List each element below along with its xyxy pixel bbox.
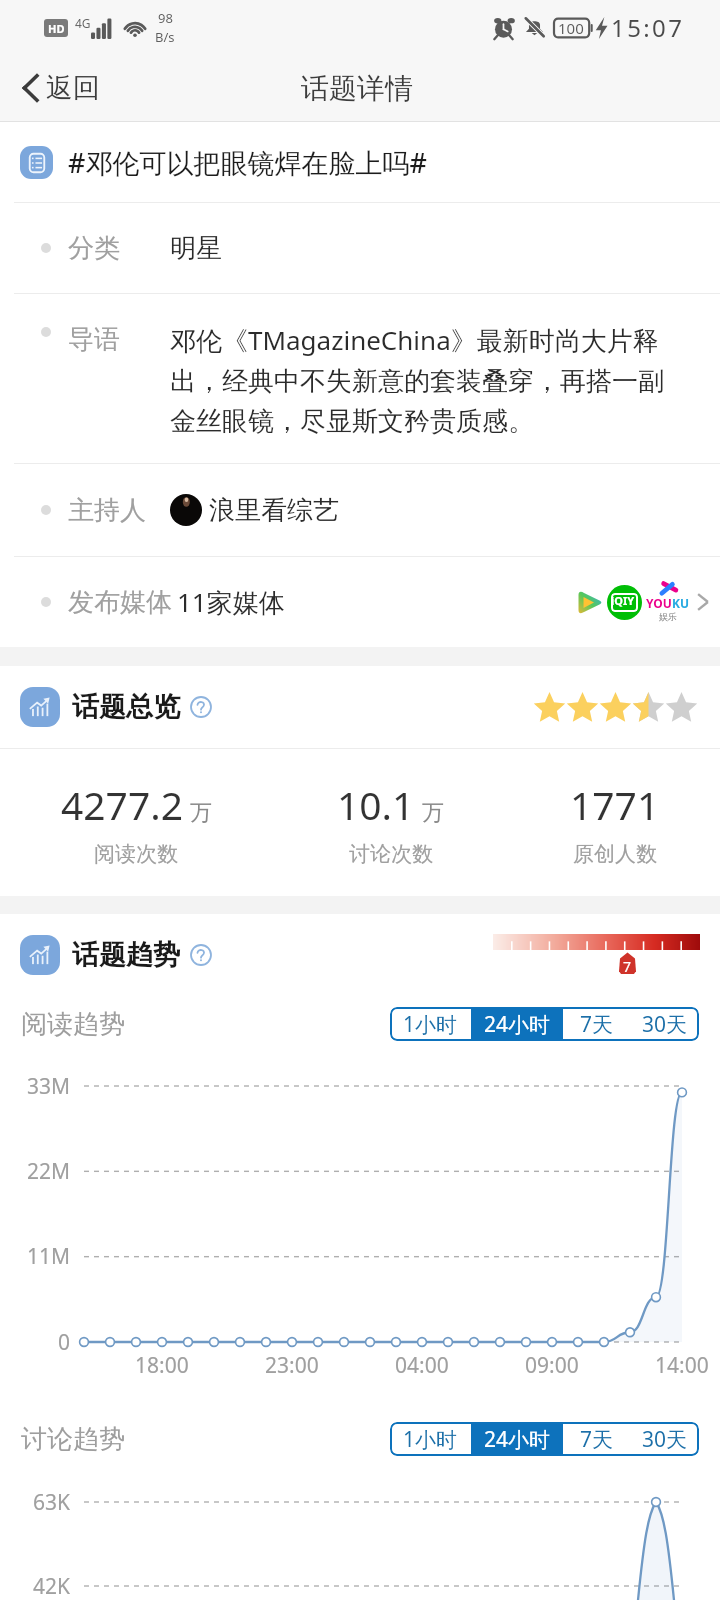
staticText: 7天 bbox=[580, 1425, 614, 1454]
staticText: 万 bbox=[422, 799, 444, 827]
staticText: 主持人 bbox=[68, 494, 146, 527]
staticText: 7天 bbox=[580, 1010, 614, 1039]
button[interactable]: 主持人 bbox=[0, 464, 720, 556]
button[interactable]: 30天 bbox=[630, 1422, 699, 1456]
staticText: 1小时 bbox=[403, 1010, 458, 1039]
staticText: 阅读趋势 bbox=[21, 1008, 125, 1041]
staticText: 42K bbox=[33, 1572, 71, 1600]
staticText: 浪里看综艺 bbox=[209, 494, 339, 527]
button[interactable]: 30天 bbox=[630, 1007, 699, 1041]
staticText: 4277.2 bbox=[61, 778, 183, 831]
button[interactable]: 1小时 bbox=[390, 1007, 471, 1041]
button[interactable]: Back bbox=[0, 54, 118, 122]
staticText: 11M bbox=[27, 1242, 71, 1271]
staticText: 98 bbox=[158, 9, 173, 27]
staticText: 30天 bbox=[642, 1425, 688, 1454]
button[interactable]: #邓伦可以把眼镜焊在脸上吗# bbox=[0, 122, 720, 202]
staticText: 04:00 bbox=[395, 1351, 449, 1380]
button[interactable]: 7天 bbox=[563, 1007, 630, 1041]
staticText: 万 bbox=[190, 799, 212, 827]
staticText: #邓伦可以把眼镜焊在脸上吗# bbox=[68, 144, 427, 181]
staticText: 4G bbox=[75, 15, 91, 31]
staticText: 阅读次数 bbox=[94, 841, 178, 867]
staticText: 讨论趋势 bbox=[21, 1423, 125, 1456]
staticText: YOU bbox=[646, 595, 672, 611]
staticText: 娱乐 bbox=[659, 611, 677, 622]
staticText: 1771 bbox=[570, 778, 660, 831]
staticText: 11家媒体 bbox=[177, 584, 285, 620]
staticText: 63K bbox=[33, 1488, 71, 1517]
staticText: 话题趋势 bbox=[72, 938, 180, 972]
staticText: 30天 bbox=[642, 1010, 688, 1039]
staticText: 导语 bbox=[68, 323, 120, 356]
staticText: 讨论次数 bbox=[349, 841, 433, 867]
staticText: 返回 bbox=[46, 71, 100, 105]
button[interactable]: 分类 bbox=[0, 203, 720, 293]
staticText: 话题总览 bbox=[72, 690, 180, 724]
button[interactable]: 24小时 bbox=[471, 1422, 563, 1456]
button[interactable]: 24小时 bbox=[471, 1007, 563, 1041]
staticText: 15:07 bbox=[611, 11, 685, 44]
staticText: 33M bbox=[27, 1072, 71, 1101]
staticText: 09:00 bbox=[525, 1351, 579, 1380]
other: Back bbox=[22, 71, 39, 105]
staticText: 0 bbox=[58, 1328, 71, 1357]
staticText: 分类 bbox=[68, 232, 120, 265]
staticText: 7 bbox=[623, 957, 632, 976]
staticText: 24小时 bbox=[484, 1010, 551, 1039]
button[interactable]: 7天 bbox=[563, 1422, 630, 1456]
staticText: 100 bbox=[558, 18, 584, 38]
staticText: 23:00 bbox=[265, 1351, 319, 1380]
staticText: 原创人数 bbox=[573, 841, 657, 867]
staticText: KU bbox=[672, 595, 690, 611]
staticText: 发布媒体 bbox=[68, 586, 172, 619]
staticText: B/s bbox=[155, 28, 175, 46]
staticText: HD bbox=[48, 21, 65, 36]
staticText: 14:00 bbox=[655, 1351, 709, 1380]
staticText: 18:00 bbox=[135, 1351, 189, 1380]
staticText: 24小时 bbox=[484, 1425, 551, 1454]
staticText: 邓伦《TMagazineChina》最新时尚大片释出，经典中不失新意的套装叠穿，… bbox=[170, 322, 688, 438]
staticText: 话题详情 bbox=[301, 71, 413, 106]
staticText: 明星 bbox=[170, 232, 222, 265]
staticText: 1小时 bbox=[403, 1425, 458, 1454]
staticText: 22M bbox=[27, 1157, 71, 1186]
button[interactable]: 导语 bbox=[0, 294, 720, 463]
staticText: 10.1 bbox=[337, 778, 415, 831]
button[interactable]: 1小时 bbox=[390, 1422, 471, 1456]
staticText: iQIYI bbox=[611, 593, 638, 612]
button[interactable]: 发布媒体 bbox=[0, 557, 720, 647]
